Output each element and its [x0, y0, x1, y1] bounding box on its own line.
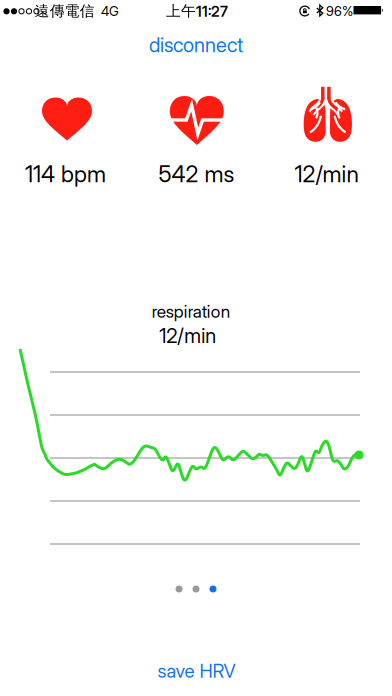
button[interactable]: save HRV: [157, 660, 235, 682]
staticText: 4G: [101, 3, 119, 19]
staticText: 12/min: [159, 324, 216, 347]
staticText: save HRV: [157, 660, 235, 682]
staticText: 114 bpm: [25, 161, 106, 187]
staticText: 上午11:27: [166, 2, 228, 20]
staticText: respiration: [152, 301, 230, 322]
staticText: 12/min: [294, 161, 358, 187]
staticText: disconnect: [149, 33, 243, 57]
staticText: 遠傳電信: [35, 2, 95, 20]
staticText: 96%: [326, 3, 353, 19]
button[interactable]: disconnect: [149, 33, 243, 57]
button[interactable]: Page control: [175, 585, 216, 592]
staticText: 542 ms: [158, 161, 234, 187]
